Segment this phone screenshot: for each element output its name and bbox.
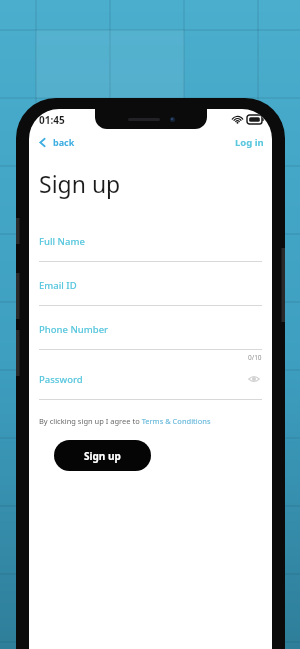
staticText: Sign up [84, 449, 121, 463]
staticText: Email ID [39, 279, 77, 292]
staticText: 01:45 [39, 113, 65, 127]
staticText: back [53, 136, 75, 148]
staticText: Log in [235, 136, 264, 149]
button[interactable]: back [29, 134, 83, 150]
button[interactable]: By clicking sign up I agree to Terms & C… [39, 416, 211, 426]
button[interactable]: Sign up [54, 440, 151, 471]
staticText: Phone Number [39, 323, 109, 336]
staticText: 0/10 [248, 353, 262, 362]
button[interactable]: Full Name [39, 235, 262, 262]
button[interactable]: Email ID [39, 279, 262, 306]
staticText: Full Name [39, 235, 85, 248]
button[interactable]: Log in [227, 134, 272, 151]
button[interactable]: Password [39, 371, 262, 400]
button[interactable]: Show password [246, 371, 262, 387]
staticText: Sign up [39, 168, 121, 199]
staticText: Password [39, 373, 83, 386]
button[interactable]: Phone Number [39, 323, 262, 350]
